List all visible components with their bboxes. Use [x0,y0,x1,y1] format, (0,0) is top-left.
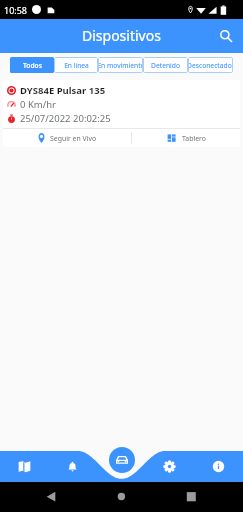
button[interactable]: Search [216,26,236,46]
staticText: Dispositivos [82,26,161,45]
staticText: DYS84E Pulsar 135 [20,84,106,97]
button[interactable]: Home [108,483,136,511]
button[interactable]: Desconectados [188,57,233,73]
staticText: Detenido [151,61,180,70]
button[interactable]: Todos [10,57,54,73]
staticText: 10:58 [4,4,28,16]
staticText: En línea [64,61,89,70]
button[interactable]: Info [194,451,243,482]
button[interactable]: Map [0,451,48,482]
staticText: En movimiento [98,61,143,70]
button[interactable]: Settings [145,451,194,482]
button[interactable]: Vehicles [109,447,135,473]
button[interactable]: Recents [177,483,205,511]
staticText: Seguir en Vivo [50,134,97,143]
button[interactable]: Notifications [48,451,96,482]
button[interactable]: Tablero [132,129,240,147]
staticText: 25/07/2022 20:02:25 [20,112,111,125]
button[interactable]: En movimiento [98,57,143,73]
button[interactable]: Back [37,483,65,511]
button[interactable]: Detenido [143,57,188,73]
button[interactable]: En línea [54,57,98,73]
button[interactable]: Seguir en Vivo [3,129,131,147]
staticText: Desconectados [188,61,233,70]
staticText: Todos [23,61,42,70]
staticText: Tablero [182,134,206,143]
staticText: 0 Km/hr [20,98,56,111]
